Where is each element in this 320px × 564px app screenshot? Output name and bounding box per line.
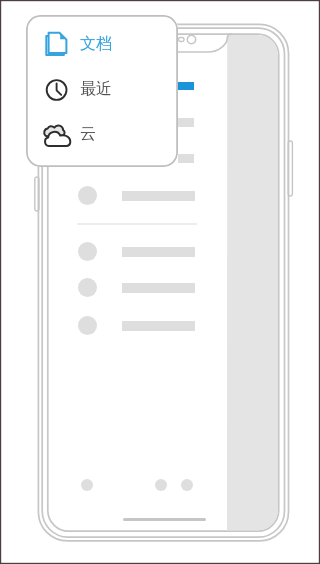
- staticText: 最近: [80, 79, 112, 99]
- button[interactable]: Search: [155, 479, 167, 491]
- button[interactable]: [78, 242, 198, 261]
- staticText: 云: [80, 124, 96, 144]
- button[interactable]: [78, 186, 198, 205]
- button[interactable]: Profile: [181, 479, 193, 491]
- button[interactable]: 文档: [44, 31, 162, 57]
- staticText: 文档: [80, 34, 112, 54]
- button[interactable]: 云: [44, 121, 162, 147]
- button[interactable]: 最近: [44, 76, 162, 102]
- button[interactable]: [78, 316, 198, 335]
- button[interactable]: [78, 278, 198, 297]
- button[interactable]: Home: [81, 479, 93, 491]
